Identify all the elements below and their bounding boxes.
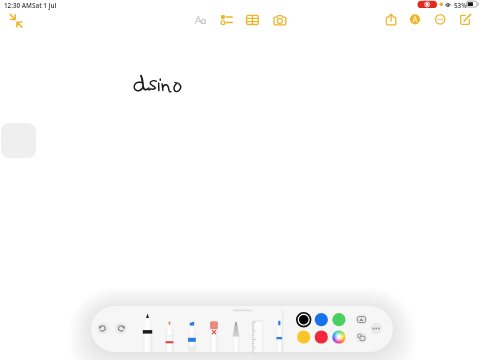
- button[interactable]: Pen: [138, 310, 158, 352]
- button[interactable]: Shapes: [356, 332, 367, 343]
- button[interactable]: Brush: [226, 310, 246, 352]
- button[interactable]: Green: [332, 313, 346, 327]
- button[interactable]: Checklist: [218, 12, 234, 26]
- button[interactable]: Table: [245, 12, 260, 26]
- button[interactable]: Redo: [114, 316, 129, 331]
- button[interactable]: Exit full screen: [7, 13, 23, 28]
- staticText: 12:30 AM: [4, 1, 32, 10]
- button[interactable]: Undo: [97, 316, 112, 331]
- button[interactable]: Eraser: [204, 310, 224, 352]
- button[interactable]: More options: [370, 323, 382, 335]
- button[interactable]: More: [434, 13, 447, 26]
- button[interactable]: Colour picker: [332, 330, 346, 344]
- button[interactable]: Share: [385, 12, 398, 26]
- button[interactable]: Black: [297, 313, 311, 327]
- button[interactable]: Yellow: [297, 330, 311, 344]
- button[interactable]: Insert: [356, 315, 367, 326]
- button[interactable]: Markup: [409, 13, 422, 26]
- button[interactable]: Blue: [314, 313, 328, 327]
- button[interactable]: Marker: [160, 310, 180, 352]
- button[interactable]: Highlighter: [182, 310, 202, 352]
- button[interactable]: Camera: [272, 12, 286, 26]
- staticText: Sat 1 Jul: [32, 1, 57, 10]
- button[interactable]: New note: [459, 13, 472, 26]
- button[interactable]: Format text: [193, 12, 208, 26]
- button[interactable]: Ruler: [248, 310, 268, 352]
- button[interactable]: Fountain pen: [270, 310, 290, 352]
- staticText: 53%: [454, 1, 467, 10]
- button[interactable]: Red: [314, 330, 328, 344]
